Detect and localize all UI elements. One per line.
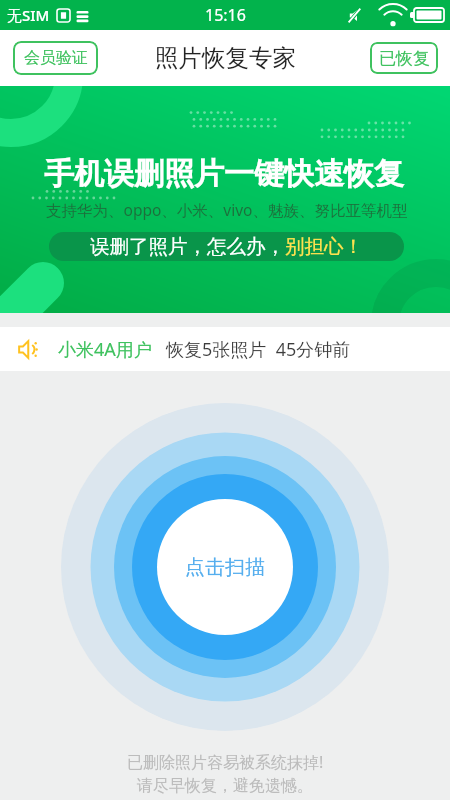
button[interactable]: 会员验证 (13, 41, 98, 75)
button[interactable]: 已恢复 (370, 42, 438, 74)
staticText: 请尽早恢复，避免遗憾。 (137, 776, 313, 796)
staticText: 支持华为、oppo、小米、vivo、魅族、努比亚等机型 (46, 199, 408, 220)
button[interactable]: 点击扫描 (157, 499, 293, 635)
staticText: 已恢复 (379, 48, 430, 69)
staticText: 照片恢复专家 (155, 43, 296, 73)
button[interactable]: 误删了照片，怎么办，别担心！ (49, 232, 404, 261)
staticText: 点击扫描 (185, 555, 265, 580)
staticText: 会员验证 (24, 48, 88, 68)
staticText: 已删除照片容易被系统抹掉! (127, 751, 324, 773)
staticText: 误删了照片，怎么办，别担心！ (90, 234, 363, 259)
staticText: 恢复5张照片 45分钟前 (166, 337, 351, 362)
staticText: 15:16 (205, 4, 246, 26)
staticText: 手机误删照片一键快速恢复 (44, 155, 404, 193)
staticText: 小米4A用户 (58, 337, 152, 362)
staticText: 无SIM (7, 5, 50, 25)
